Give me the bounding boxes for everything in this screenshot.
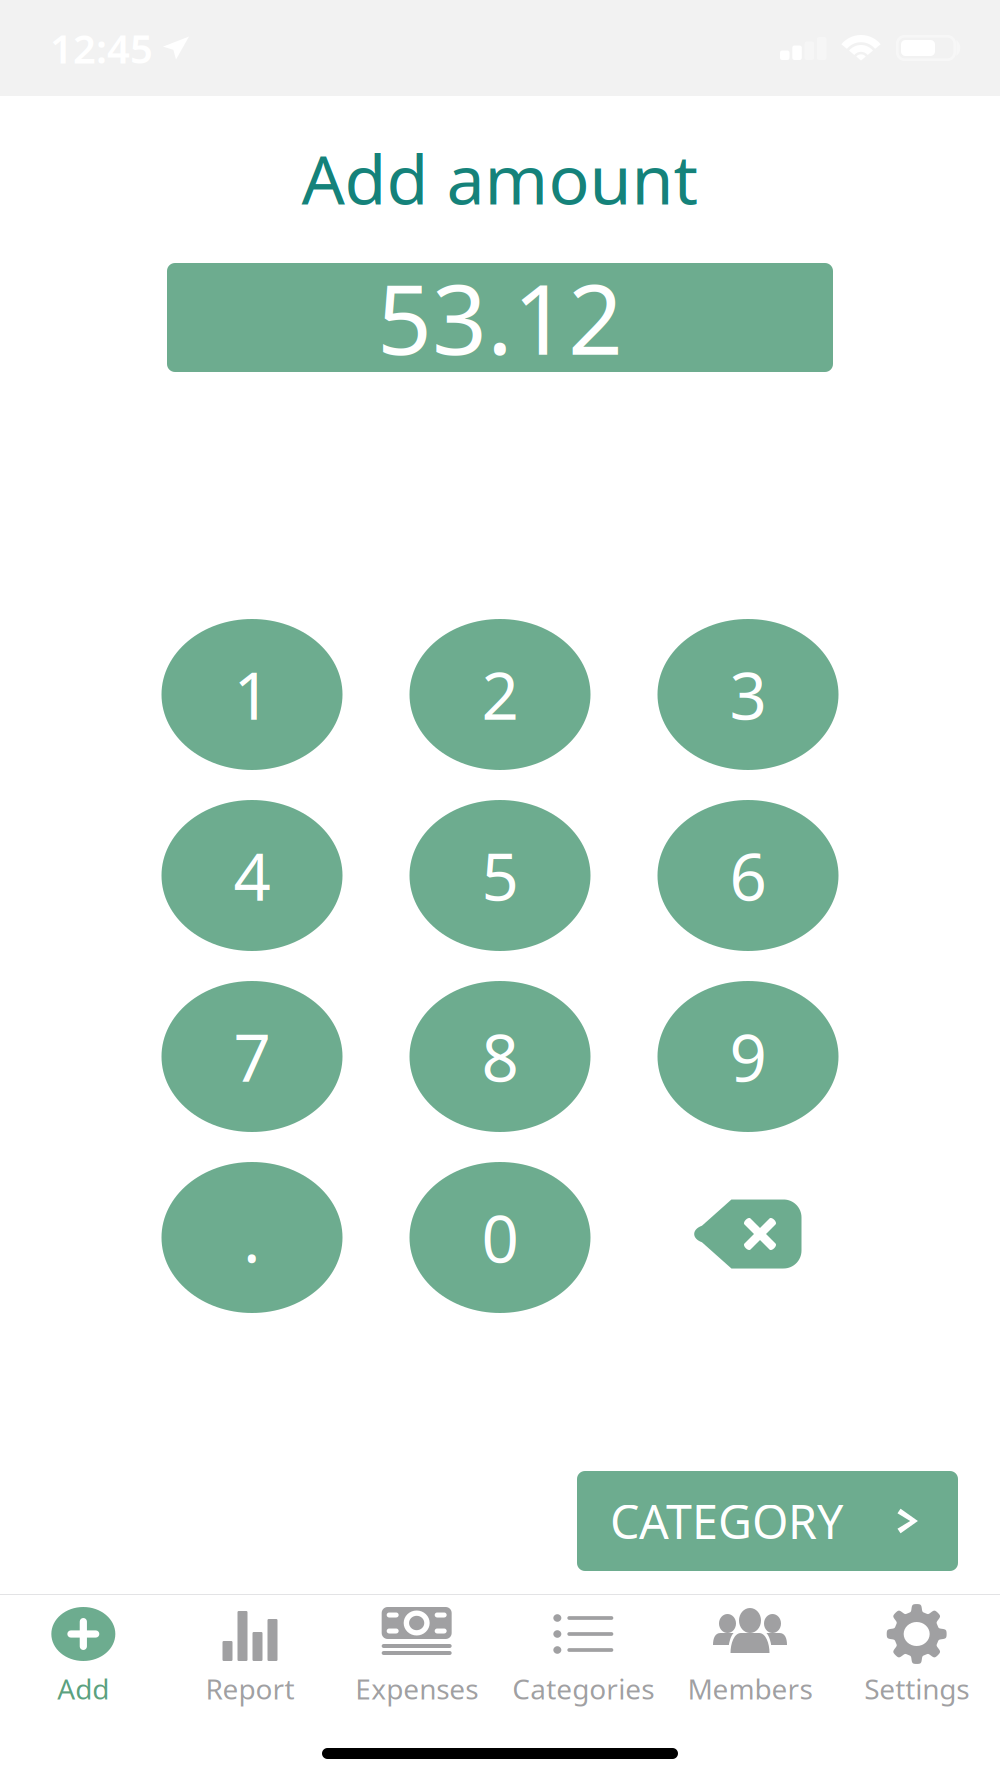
button[interactable]: Add xyxy=(0,1594,167,1718)
staticText: Expenses xyxy=(355,1670,478,1707)
button[interactable]: Members xyxy=(667,1594,833,1718)
staticText: 12:45 xyxy=(50,21,153,74)
staticText: 0 xyxy=(481,1194,518,1281)
button[interactable]: 8 xyxy=(409,981,590,1132)
staticText: Report xyxy=(205,1670,294,1707)
staticText: . xyxy=(243,1194,261,1281)
staticText: 4 xyxy=(233,832,270,919)
staticText: 5 xyxy=(481,832,518,919)
button[interactable]: 7 xyxy=(161,981,342,1132)
staticText: 1 xyxy=(233,651,270,738)
button[interactable]: CATEGORY xyxy=(577,1471,958,1571)
staticText: 3 xyxy=(729,651,766,738)
button[interactable]: Delete xyxy=(657,1162,838,1313)
staticText: 9 xyxy=(729,1013,766,1100)
button[interactable]: 3 xyxy=(657,619,838,770)
button[interactable]: 2 xyxy=(409,619,590,770)
staticText: Settings xyxy=(864,1670,969,1707)
staticText: 53.12 xyxy=(377,254,623,381)
staticText: 8 xyxy=(481,1013,518,1100)
staticText: 2 xyxy=(481,651,518,738)
staticText: Add amount xyxy=(301,133,698,223)
button[interactable]: Expenses xyxy=(333,1594,500,1718)
button[interactable]: 0 xyxy=(409,1162,590,1313)
button[interactable]: 5 xyxy=(409,800,590,951)
staticText: Categories xyxy=(512,1670,654,1707)
staticText: 6 xyxy=(729,832,766,919)
staticText: CATEGORY xyxy=(610,1490,843,1552)
button[interactable]: Categories xyxy=(500,1594,667,1718)
button[interactable]: 9 xyxy=(657,981,838,1132)
button[interactable]: . xyxy=(161,1162,342,1313)
button[interactable]: 6 xyxy=(657,800,838,951)
staticText: Add xyxy=(57,1670,109,1707)
button[interactable]: 4 xyxy=(161,800,342,951)
staticText: 7 xyxy=(233,1013,270,1100)
button[interactable]: Report xyxy=(167,1594,333,1718)
staticText: Members xyxy=(687,1670,812,1707)
button[interactable]: Settings xyxy=(833,1594,1000,1718)
button[interactable]: 1 xyxy=(161,619,342,770)
